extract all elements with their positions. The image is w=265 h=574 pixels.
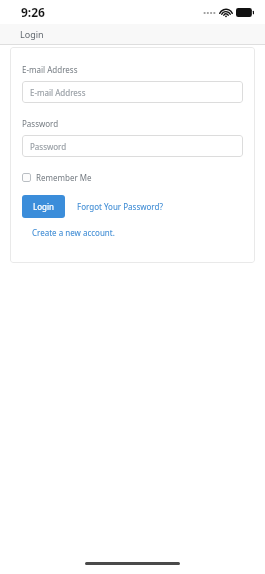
button[interactable]: Forgot Your Password?: [77, 197, 163, 216]
staticText: Password: [30, 141, 67, 152]
staticText: Forgot Your Password?: [77, 201, 163, 212]
staticText: Login: [20, 28, 44, 40]
button[interactable]: E-mail Address: [22, 81, 243, 103]
staticText: E-mail Address: [22, 64, 78, 75]
staticText: 9:26: [21, 4, 45, 20]
button[interactable]: Password: [22, 135, 243, 157]
button[interactable]: Login: [22, 195, 65, 218]
staticText: Remember Me: [36, 172, 92, 183]
button[interactable]: Create a new account.: [32, 224, 115, 241]
staticText: Create a new account.: [32, 227, 115, 238]
other: Remember Me checkbox: [22, 173, 31, 182]
staticText: Login: [33, 201, 54, 212]
button[interactable]: Remember Me checkbox: [22, 170, 92, 185]
staticText: Password: [22, 118, 59, 129]
staticText: E-mail Address: [30, 87, 86, 98]
